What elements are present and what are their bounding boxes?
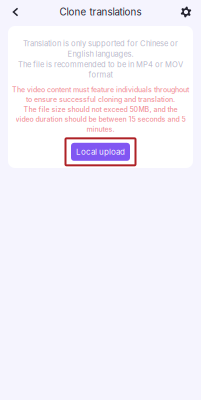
button[interactable]: Local upload <box>71 143 130 161</box>
staticText: video duration should be between 15 seco… <box>15 115 185 123</box>
staticText: English languages. <box>67 49 133 59</box>
staticText: The file is recommended to be in MP4 or … <box>18 60 183 69</box>
staticText: Local upload <box>76 147 125 157</box>
staticText: minutes. <box>86 125 114 133</box>
button[interactable]: Settings <box>171 0 201 24</box>
button[interactable]: Back <box>0 0 31 24</box>
staticText: format <box>88 70 112 79</box>
staticText: The file size should not exceed 50MB, an… <box>23 105 177 114</box>
staticText: The video content must feature individua… <box>12 85 189 94</box>
staticText: to ensure successful cloning and transla… <box>26 95 175 104</box>
staticText: Clone translations <box>59 6 141 18</box>
staticText: Translation is only supported for Chines… <box>23 39 178 48</box>
